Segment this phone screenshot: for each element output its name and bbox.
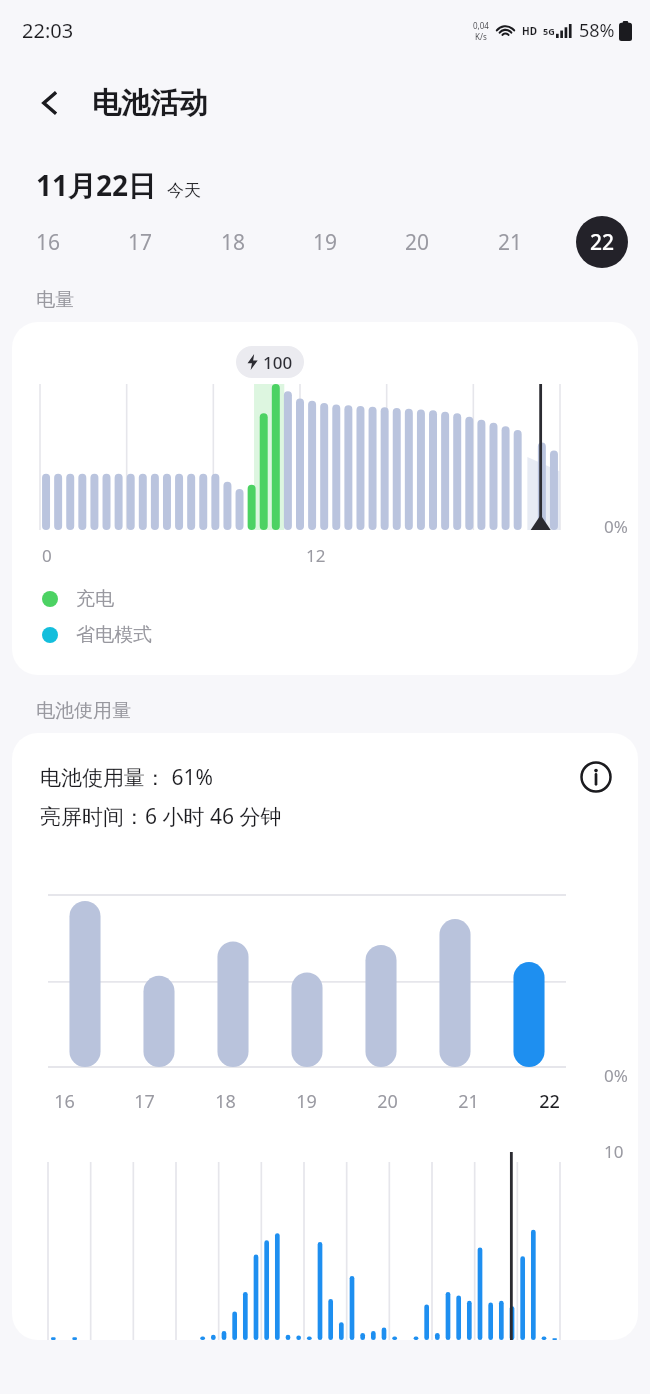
button[interactable]: 18 [207,216,259,268]
staticText: 亮屏时间：6 小时 46 分钟 [40,802,282,831]
staticText: K/s [475,31,487,42]
staticText: 0,04 [473,20,489,31]
button[interactable]: 电池使用量： 61% [12,733,638,1340]
staticText: 22 [590,228,615,257]
staticText: 58% [579,18,615,43]
button[interactable]: 17 [114,216,166,268]
button[interactable]: 16 [22,216,74,268]
staticText: 0% [604,1064,628,1087]
staticText: 16 [54,1089,75,1114]
staticText: 11月22日 [36,166,157,204]
staticText: 20 [405,228,430,257]
staticText: 10 [604,1140,624,1163]
staticText: 电量 [36,288,74,312]
staticText: 今天 [167,180,201,201]
staticText: 12 [306,544,326,567]
button[interactable]: 22 [576,216,628,268]
staticText: 0% [604,515,628,538]
button[interactable]: 100 [12,322,638,675]
staticText: 0 [42,544,52,567]
staticText: 22:03 [22,17,74,44]
staticText: 20 [377,1089,398,1114]
button[interactable]: 21 [484,216,536,268]
button[interactable]: 省电模式 [42,623,638,647]
staticText: 21 [458,1089,479,1114]
staticText: 100 [263,351,293,373]
staticText: 17 [128,228,153,257]
button[interactable]: 20 [391,216,443,268]
staticText: 19 [296,1089,317,1114]
staticText: 18 [215,1089,236,1114]
button[interactable]: Back [26,79,74,127]
staticText: 17 [134,1089,155,1114]
staticText: 电池活动 [92,85,208,122]
staticText: 电池使用量： 61% [40,763,213,792]
staticText: 21 [498,228,523,257]
button[interactable]: 19 [299,216,351,268]
staticText: 19 [313,228,338,257]
button[interactable]: 充电 [42,587,638,611]
staticText: 18 [221,228,246,257]
button[interactable]: Info [572,753,620,801]
staticText: 省电模式 [76,623,152,647]
staticText: 电池使用量 [36,699,131,723]
staticText: 充电 [76,587,114,611]
staticText: 22 [539,1089,560,1114]
staticText: 16 [36,228,61,257]
staticText: 5G [543,25,555,37]
staticText: HD [522,24,537,38]
